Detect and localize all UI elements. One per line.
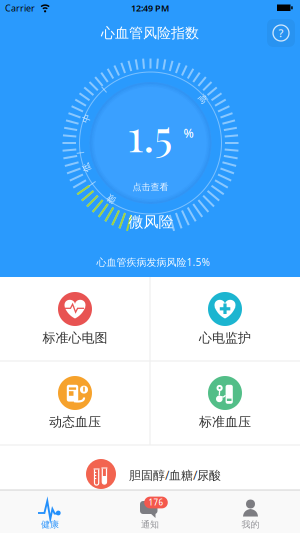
staticText: 点击查看 (132, 181, 168, 193)
staticText: 低 (82, 162, 91, 173)
staticText: 心血管风险指数 (101, 24, 199, 42)
staticText: 微风险 (128, 213, 173, 231)
staticText: 心血管疾病发病风险1.5% (96, 255, 209, 269)
staticText: 12:49 PM (131, 2, 169, 14)
staticText: Carrier (5, 2, 35, 14)
staticText: 中 (82, 113, 91, 124)
button[interactable]: 点击查看 (85, 78, 215, 208)
button[interactable]: 动态血压 (0, 361, 150, 445)
staticText: % (183, 125, 193, 141)
staticText: 微 (107, 194, 116, 205)
staticText: ? (278, 26, 283, 40)
button[interactable]: 我的 (200, 447, 300, 533)
button[interactable]: 健康 (0, 447, 100, 533)
staticText: 标准心电图 (42, 330, 107, 346)
staticText: 健康 (41, 519, 59, 530)
staticText: 动态血压 (49, 414, 101, 430)
staticText: 1.5 (127, 105, 172, 163)
button[interactable]: 胆固醇/血糖/尿酸 (0, 445, 300, 490)
staticText: 我的 (241, 519, 259, 530)
staticText: 高 (198, 93, 207, 104)
button[interactable]: 标准血压 (150, 361, 300, 445)
staticText: 心电监护 (199, 330, 251, 346)
staticText: 标准血压 (199, 414, 251, 430)
staticText: 通知 (141, 519, 159, 530)
staticText: 176 (148, 497, 163, 508)
staticText: 胆固醇/血糖/尿酸 (129, 467, 221, 483)
button[interactable]: 心电监护 (150, 277, 300, 361)
button[interactable]: 176 (100, 447, 200, 533)
button[interactable]: 标准心电图 (0, 277, 150, 361)
button[interactable]: 帮助 (267, 19, 295, 47)
